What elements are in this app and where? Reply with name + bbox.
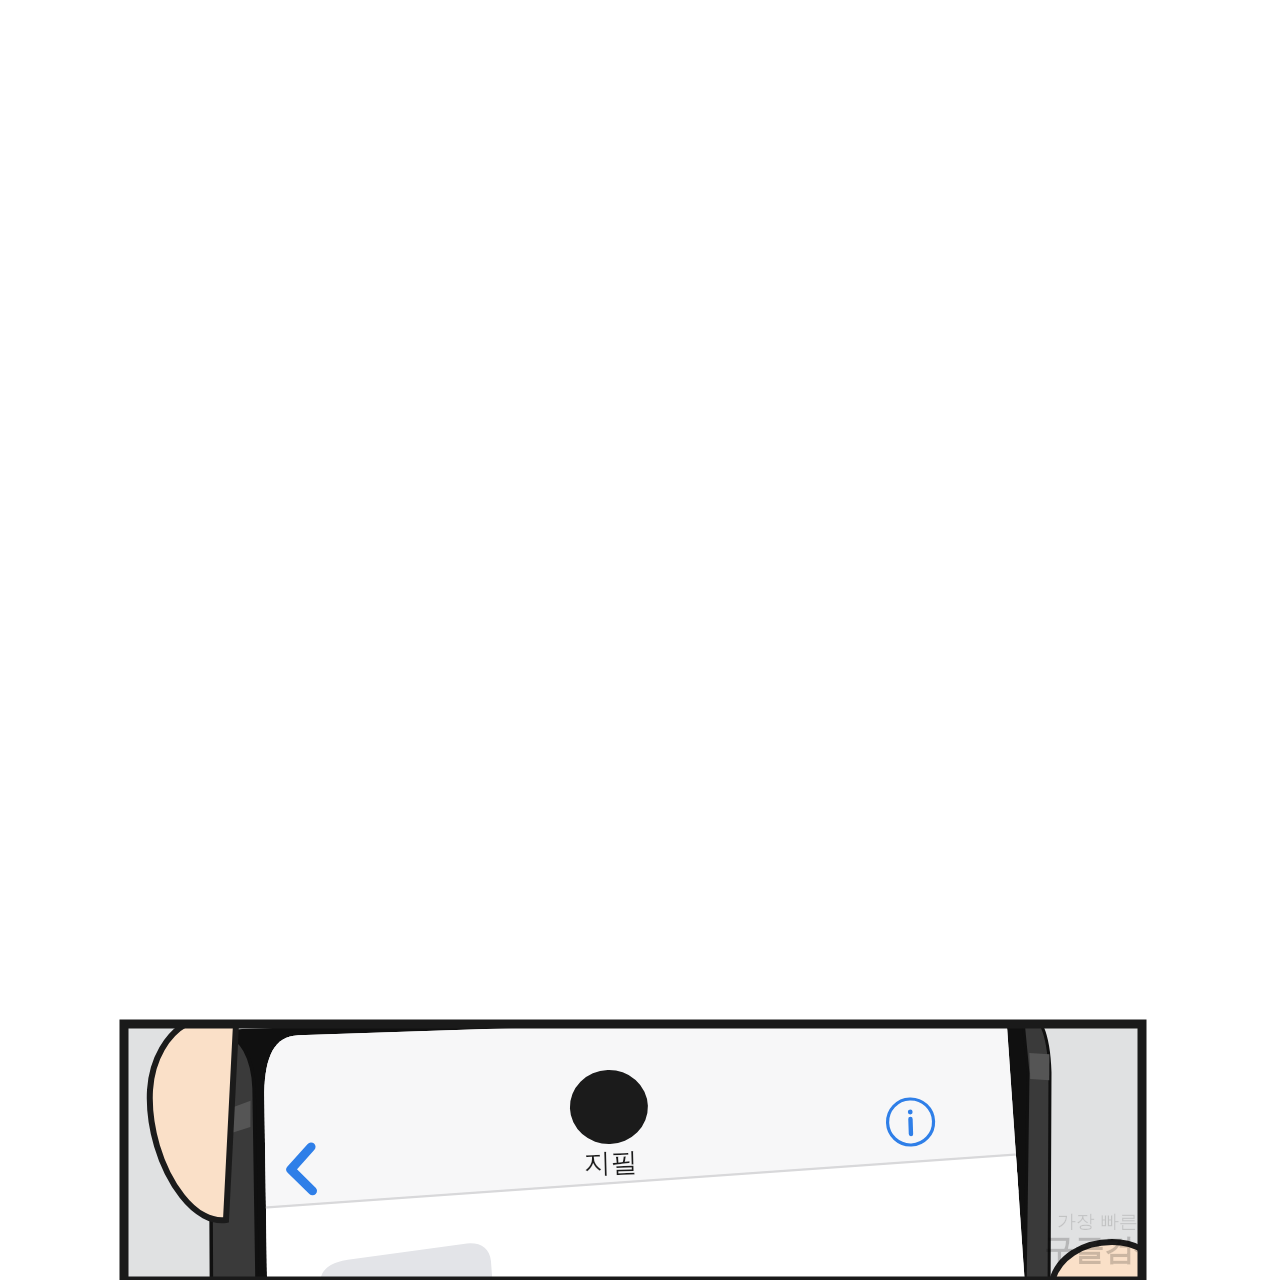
button[interactable]: Comic panel: chat screen on phone: [0, 0, 1280, 1280]
